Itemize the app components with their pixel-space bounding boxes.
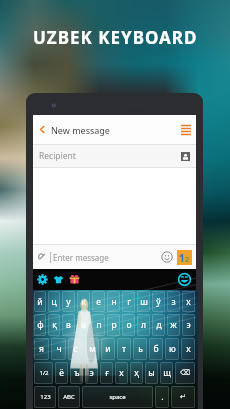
button[interactable]: я [34,338,49,360]
staticText: space [109,393,126,401]
button[interactable]: ы [145,362,158,384]
button[interactable]: ш [137,291,150,312]
button[interactable]: н [107,291,120,312]
staticText: б [153,343,159,355]
button[interactable]: э [182,314,195,336]
button[interactable]: ABC [58,386,80,408]
button[interactable]: ё [55,362,68,384]
staticText: ABC [63,393,75,401]
staticText: у [66,296,71,308]
staticText: ў [156,296,161,308]
staticText: й [37,296,43,308]
button[interactable]: ж [167,314,180,336]
staticText: ш [140,296,148,308]
button[interactable]: 123 [34,386,56,408]
staticText: х [119,367,124,379]
staticText: м [89,343,96,355]
button[interactable]: ↵ [171,386,195,408]
button[interactable]: ғ [100,362,113,384]
button[interactable]: д [152,314,165,336]
button[interactable]: в [62,314,75,336]
staticText: ↵ [180,393,186,401]
button[interactable]: п [92,314,105,336]
button[interactable]: х [182,291,195,312]
staticText: х [186,296,191,308]
button[interactable]: ю [165,338,179,360]
button[interactable]: ъ [70,362,83,384]
staticText: э [186,319,191,331]
staticText: ъ [74,367,80,379]
staticText: ё [59,367,64,379]
button[interactable]: г [122,291,135,312]
staticText: 123 [40,393,51,401]
staticText: Enter message [53,252,109,263]
button[interactable]: к [77,291,90,312]
button[interactable]: . [155,386,169,408]
button[interactable]: Themes [53,274,64,285]
staticText: з [171,296,176,308]
staticText: ⌫ [180,369,190,377]
button[interactable]: ь [133,338,147,360]
staticText: д [156,319,162,331]
button[interactable]: ч [51,338,66,360]
staticText: ғ [105,367,109,379]
button[interactable]: ў [152,291,165,312]
staticText: п [96,319,102,331]
button[interactable]: space [82,386,153,408]
staticText: к [81,296,86,308]
staticText: ь [138,343,143,355]
button[interactable]: щ [160,362,173,384]
button[interactable]: е [92,291,105,312]
staticText: ҳ [134,367,139,379]
button[interactable]: ҳ [130,362,143,384]
button[interactable]: қ [48,314,60,336]
button[interactable]: Emoji [161,251,173,263]
button[interactable]: с [68,338,83,360]
button[interactable]: и [101,338,115,360]
staticText: р [111,319,117,331]
button[interactable]: э [85,362,98,384]
staticText: х [186,343,191,355]
staticText: ы [148,367,155,379]
button[interactable]: й [34,291,46,312]
staticText: я [39,343,44,355]
button[interactable]: у [62,291,75,312]
staticText: н [111,296,117,308]
staticText: г [127,296,131,308]
button[interactable]: л [137,314,150,336]
button[interactable]: Emoji keyboard [178,273,191,286]
staticText: т [122,343,126,355]
button[interactable]: з [167,291,180,312]
staticText: New message [51,124,110,136]
staticText: э [89,367,94,379]
staticText: а [81,319,86,331]
button[interactable]: ц [48,291,60,312]
button[interactable]: а [77,314,90,336]
staticText: с [73,343,78,355]
button[interactable]: Back [33,115,51,144]
button[interactable]: ф [34,314,46,336]
button[interactable]: Settings [37,274,48,285]
button[interactable]: Send [177,250,192,265]
button[interactable]: ⌫ [175,362,195,384]
staticText: о [126,319,132,331]
staticText: 1 [179,251,185,265]
staticText: ц [51,296,57,308]
staticText: е [96,296,101,308]
button[interactable]: Attach [37,252,47,262]
button[interactable]: р [107,314,120,336]
staticText: қ [52,319,57,331]
button[interactable]: Contacts [181,152,190,161]
button[interactable]: 1/2 [34,362,53,384]
staticText: и [105,343,111,355]
button[interactable]: Gifts [69,274,80,285]
button[interactable]: о [122,314,135,336]
button[interactable]: Menu [176,115,196,144]
staticText: Recipient [39,150,76,162]
staticText: ж [170,319,177,331]
button[interactable]: м [85,338,99,360]
button[interactable]: б [149,338,163,360]
button[interactable]: х [181,338,195,360]
button[interactable]: т [117,338,131,360]
button[interactable]: х [115,362,128,384]
